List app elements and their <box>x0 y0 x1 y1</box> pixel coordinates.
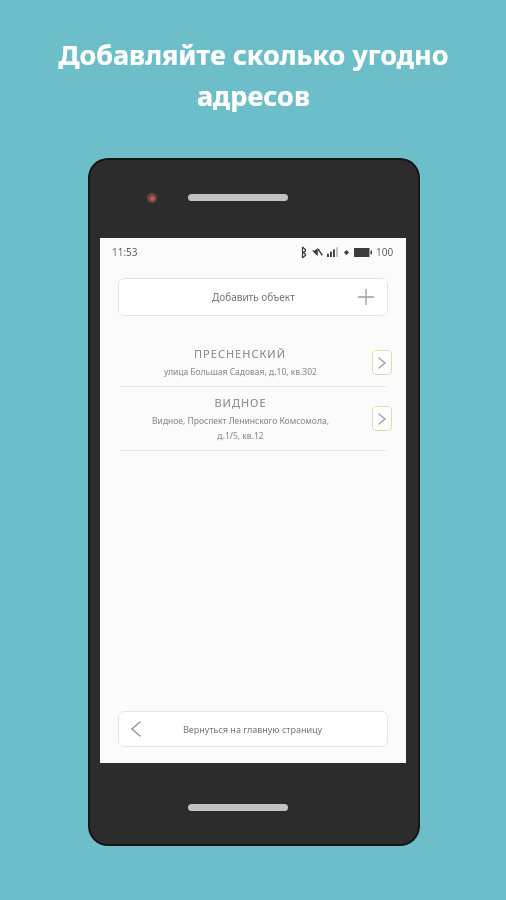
staticText: Вернуться на главную страницу <box>183 723 323 735</box>
staticText: Видное, Проспект Ленинского Комсомола, <box>152 415 329 427</box>
button[interactable]: ВИДНОЕ <box>100 387 406 450</box>
button[interactable]: Открыть ПРЕСНЕНСКИЙ <box>372 350 392 375</box>
staticText: ВИДНОЕ <box>214 395 267 410</box>
button[interactable]: Добавить объект <box>118 278 388 316</box>
staticText: 100 <box>376 245 394 259</box>
staticText: улица Большая Садовая, д.10, кв.302 <box>164 366 317 378</box>
staticText: д.1/5, кв.12 <box>217 430 264 442</box>
staticText: 11:53 <box>112 245 138 259</box>
button[interactable]: Открыть ВИДНОЕ <box>372 406 392 431</box>
staticText: Добавляйте сколько угодно <box>58 36 449 73</box>
staticText: адресов <box>197 77 310 114</box>
button[interactable]: ПРЕСНЕНСКИЙ <box>100 338 406 386</box>
button[interactable]: Вернуться на главную страницу <box>118 711 388 747</box>
staticText: Добавить объект <box>212 290 295 304</box>
staticText: ПРЕСНЕНСКИЙ <box>194 346 286 361</box>
